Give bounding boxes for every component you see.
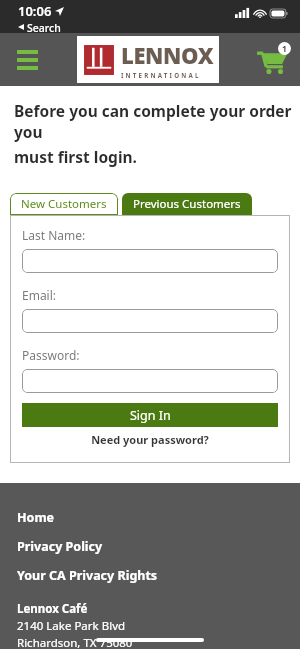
button[interactable]: Your CA Privacy Rights (17, 567, 158, 584)
staticText: Password: (22, 347, 80, 363)
staticText: Before you can complete your order you (14, 100, 300, 142)
staticText: New Customers (21, 196, 107, 212)
button[interactable] (22, 369, 278, 393)
staticText: Home (17, 509, 55, 526)
button[interactable]: New Customers (10, 193, 118, 215)
staticText: 1 (282, 43, 287, 55)
button[interactable]: Home (17, 509, 55, 526)
staticText: Sign In (130, 407, 171, 424)
staticText: Richardson, TX 75080 (17, 635, 133, 649)
staticText: Lennox Café (17, 601, 88, 617)
staticText: Your CA Privacy Rights (17, 567, 158, 584)
staticText: Privacy Policy (17, 538, 103, 555)
staticText: INTERNATIONAL (121, 71, 201, 79)
staticText: 10:06 (18, 2, 52, 20)
staticText: Search (27, 21, 61, 33)
button[interactable] (22, 249, 278, 273)
button[interactable]: Sign In (22, 403, 278, 427)
button[interactable]: Cart, 1 item (252, 40, 292, 80)
staticText: Last Name: (22, 227, 86, 243)
staticText: Email: (22, 287, 57, 303)
button[interactable]: Menu (8, 41, 46, 79)
button[interactable]: Need your password? (22, 432, 278, 447)
button[interactable]: Previous Customers (122, 193, 252, 215)
button[interactable] (22, 309, 278, 333)
staticText: LENNOX (121, 40, 214, 70)
staticText: Previous Customers (133, 196, 241, 212)
staticText: Need your password? (91, 432, 209, 447)
staticText: must first login. (14, 146, 137, 167)
staticText: 2140 Lake Park Blvd (17, 618, 126, 634)
button[interactable]: Privacy Policy (17, 538, 103, 555)
